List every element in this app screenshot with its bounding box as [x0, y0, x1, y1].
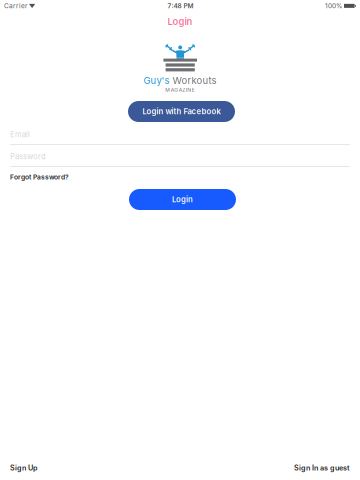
staticText: MAGAZINE [165, 87, 195, 93]
staticText: Carrier [4, 2, 27, 10]
staticText: Email [10, 130, 30, 139]
staticText: Forgot Password? [10, 173, 69, 181]
button[interactable]: Login with Facebook [128, 101, 235, 122]
staticText: Workouts [169, 75, 216, 86]
button[interactable]: Sign Up [10, 464, 37, 472]
staticText: 7:48 PM [167, 2, 193, 10]
staticText: Guy's [143, 75, 169, 86]
staticText: 100% [325, 2, 342, 10]
staticText: Login with Facebook [142, 107, 220, 116]
staticText: Sign Up [10, 464, 37, 472]
staticText: Login [172, 195, 193, 204]
staticText: Password [10, 152, 46, 161]
button[interactable]: Login [129, 189, 236, 210]
staticText: Sign In as guest [294, 464, 350, 472]
button[interactable]: Forgot Password? [10, 173, 69, 181]
staticText: Login [167, 16, 192, 27]
button[interactable]: Sign In as guest [294, 464, 350, 472]
